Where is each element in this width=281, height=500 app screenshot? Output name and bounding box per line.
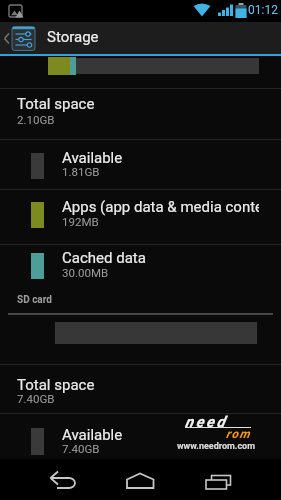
button[interactable]: Total space (0, 89, 281, 139)
staticText: 01:12 (248, 3, 278, 17)
staticText: rom (226, 427, 252, 441)
button[interactable]: Cached data (0, 245, 281, 288)
staticText: www.needrom.com (177, 441, 255, 452)
staticText: 192MB (62, 215, 99, 228)
button[interactable]: Storage (0, 22, 281, 54)
staticText: Available (62, 426, 259, 444)
staticText: 2.10GB (17, 113, 55, 126)
staticText: Total space (17, 376, 95, 394)
staticText: Storage (47, 28, 99, 46)
staticText: SD card (17, 294, 52, 306)
staticText: need (185, 413, 228, 431)
staticText: Available (62, 149, 259, 167)
staticText: Apps (app data & media content) (62, 198, 259, 216)
button[interactable]: Available (0, 140, 281, 189)
button[interactable]: Total space (0, 365, 281, 413)
button[interactable] (34, 459, 90, 500)
button[interactable] (190, 459, 246, 500)
staticText: 7.40GB (62, 442, 100, 455)
button[interactable]: Available (0, 414, 281, 460)
staticText: 1.81GB (62, 165, 100, 178)
staticText: Cached data (62, 249, 259, 267)
staticText: 30.00MB (62, 266, 109, 279)
staticText: Total space (17, 95, 95, 113)
button[interactable]: Apps (app data & media content) (0, 190, 281, 244)
button[interactable] (112, 459, 168, 500)
staticText: 7.40GB (17, 392, 55, 405)
